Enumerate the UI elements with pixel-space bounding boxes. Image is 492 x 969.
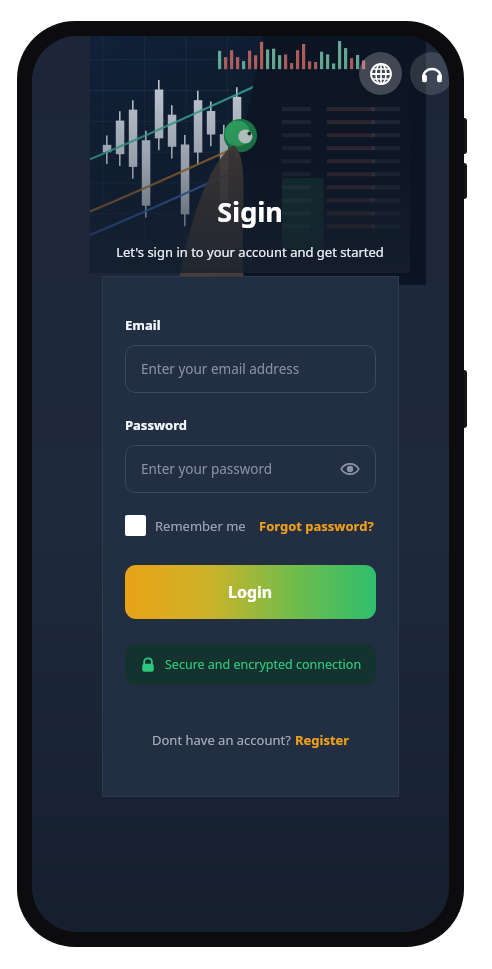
staticText: Secure and encrypted connection <box>165 656 362 673</box>
button[interactable]: Support <box>410 52 449 95</box>
button[interactable]: Enter your password <box>125 445 376 493</box>
staticText: Register <box>295 731 350 749</box>
staticText: Login <box>228 581 273 603</box>
staticText: Sigin <box>217 193 283 230</box>
staticText: Enter your email address <box>141 360 300 378</box>
button[interactable]: Secure and encrypted connection <box>125 644 376 685</box>
button[interactable]: Register <box>295 731 350 749</box>
staticText: Email <box>125 316 161 334</box>
staticText: Forgot password? <box>259 517 374 535</box>
staticText: Dont have an account? <box>152 731 295 749</box>
button[interactable]: Login <box>125 565 376 619</box>
button[interactable]: Forgot password? <box>259 517 374 535</box>
button[interactable]: Language <box>359 52 402 95</box>
staticText: Password <box>125 416 187 434</box>
button[interactable]: Remember me <box>125 515 246 536</box>
staticText: Remember me <box>155 517 246 535</box>
button[interactable]: Enter your email address <box>125 345 376 393</box>
staticText: Enter your password <box>141 460 273 478</box>
staticText: Let's sign in to your account and get st… <box>116 243 384 261</box>
